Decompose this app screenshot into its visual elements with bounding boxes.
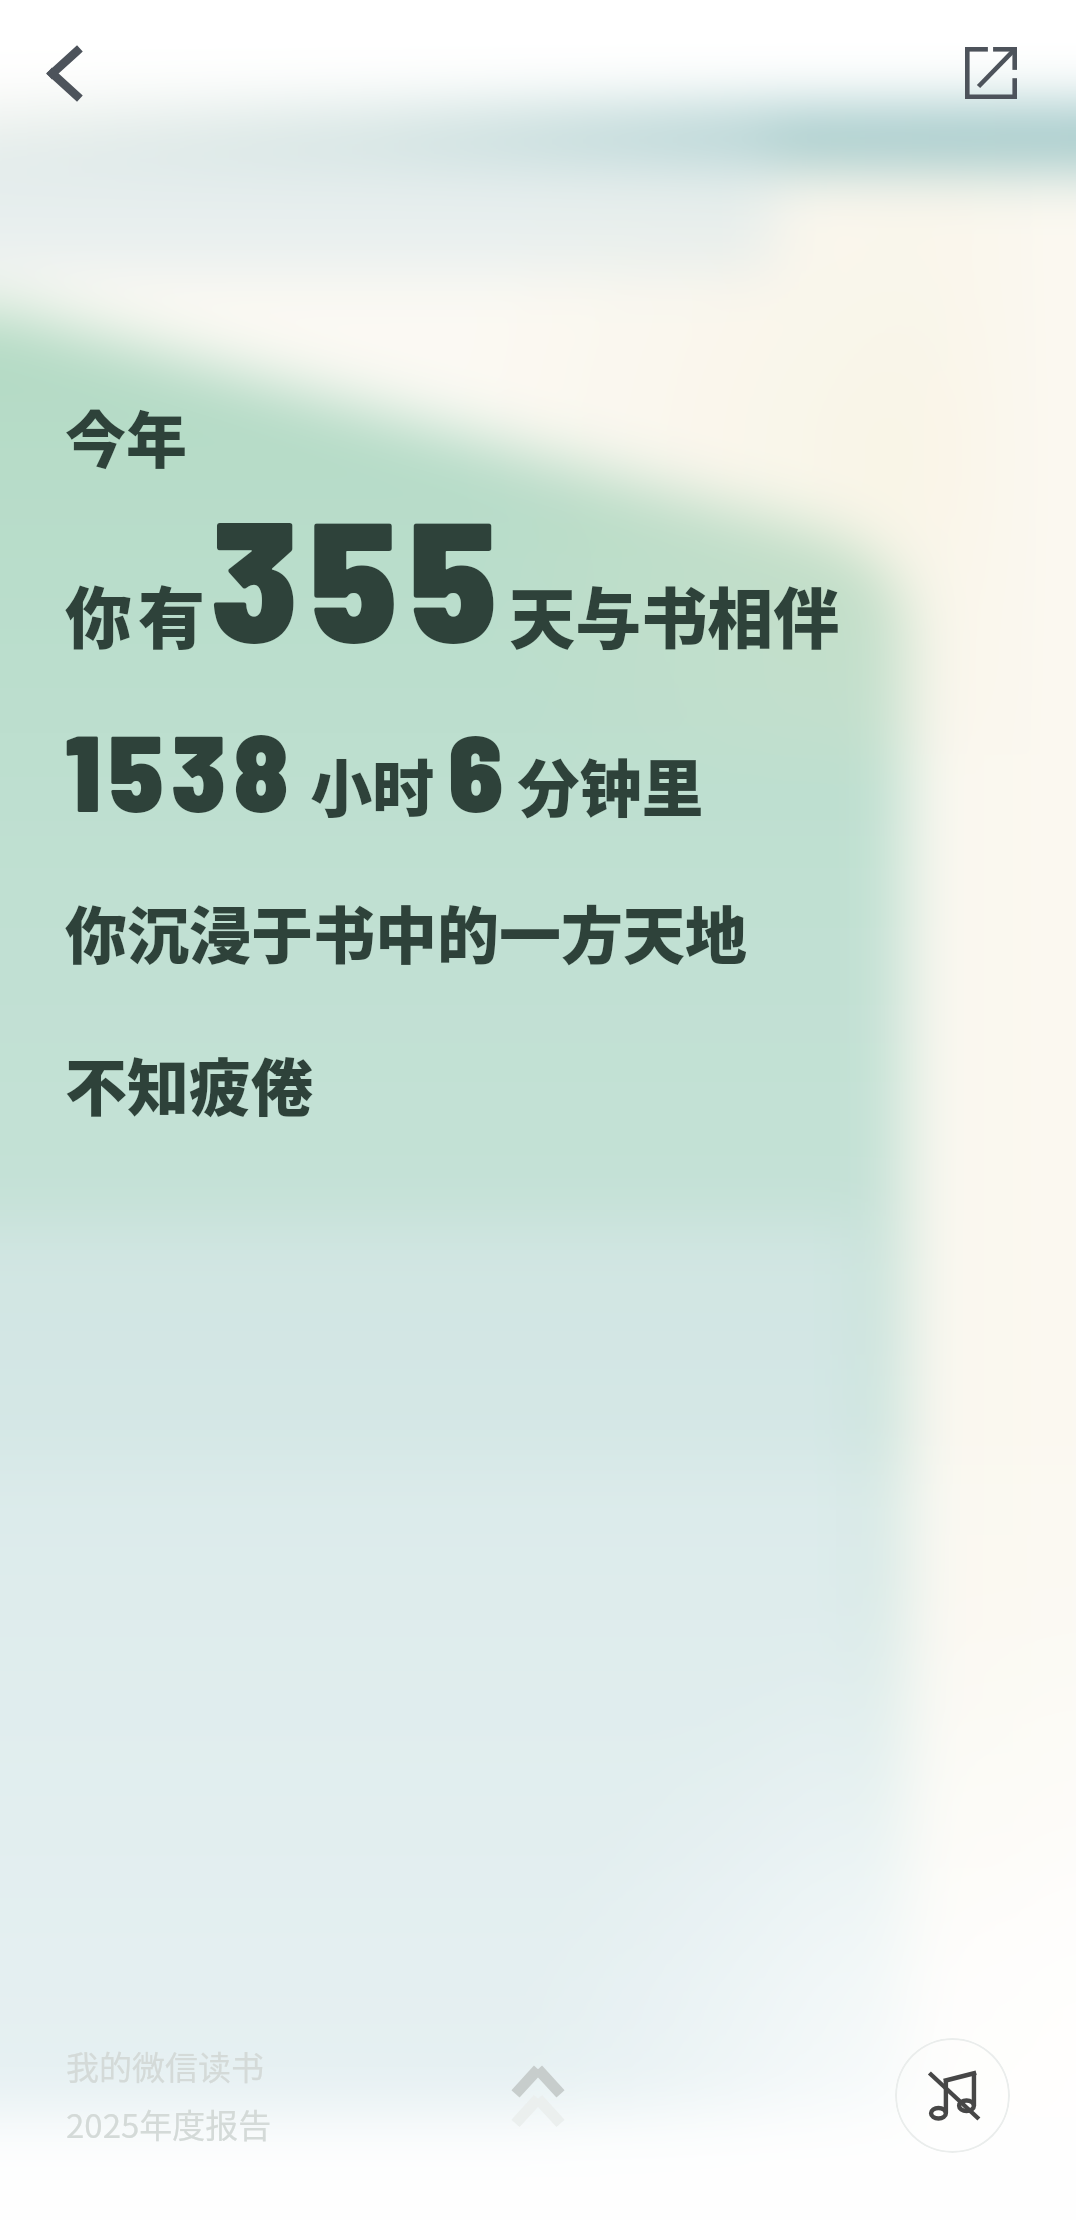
staticText: 今年 bbox=[65, 392, 188, 480]
staticText: 我的微信读书 bbox=[66, 2042, 264, 2090]
staticText: 2025年度报告 bbox=[66, 2100, 272, 2148]
staticText: 不知疲倦 bbox=[65, 1039, 314, 1129]
staticText: 你沉浸于书中的一方天地 bbox=[65, 887, 748, 977]
button[interactable]: Share bbox=[941, 23, 1041, 123]
button[interactable]: Back bbox=[14, 23, 114, 123]
button[interactable]: Scroll up bbox=[478, 2042, 598, 2162]
staticText: 你有355天与书相伴 bbox=[65, 472, 840, 677]
staticText: 1538 小时 6 分钟里 bbox=[65, 704, 704, 834]
button[interactable]: Mute background music bbox=[895, 2038, 1010, 2153]
